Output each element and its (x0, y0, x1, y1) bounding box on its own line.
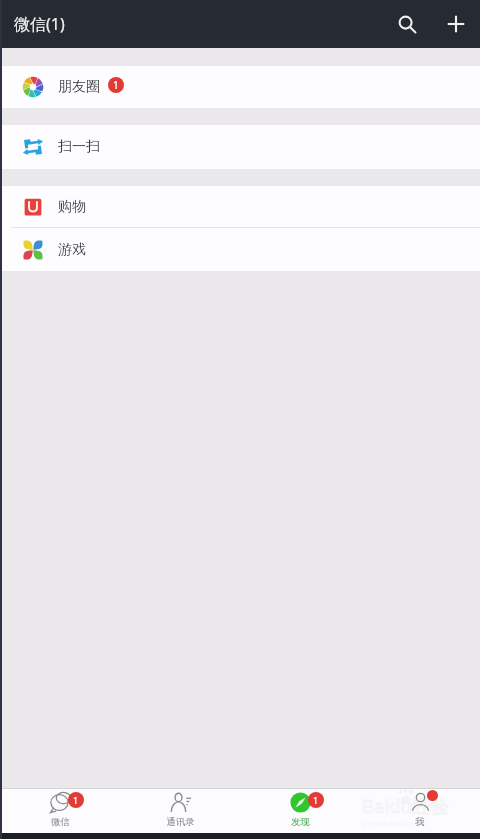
button[interactable]: 朋友圈 (0, 66, 480, 108)
staticText: 游戏 (58, 241, 86, 259)
staticText: 通讯录 (166, 816, 195, 828)
staticText: jingyan.baidu.com (362, 818, 427, 828)
staticText: 1 (313, 794, 319, 806)
button[interactable]: Search (386, 3, 428, 45)
button[interactable]: 我 (360, 789, 480, 833)
staticText: 发现 (291, 816, 310, 828)
staticText: 微信(1) (14, 13, 65, 35)
button[interactable]: 1 (240, 789, 360, 833)
staticText: 我 (415, 816, 425, 828)
staticText: 购物 (58, 198, 86, 216)
button[interactable]: 购物 (0, 186, 480, 228)
staticText: 微信 (51, 816, 70, 828)
staticText: 朋友圈 (58, 78, 100, 96)
button[interactable]: 扫一扫 (0, 125, 480, 169)
button[interactable]: 通讯录 (120, 789, 240, 833)
button[interactable]: 游戏 (0, 228, 480, 271)
staticText: 1 (113, 78, 119, 92)
staticText: Baidu经验 (362, 793, 449, 818)
staticText: 1 (73, 794, 79, 806)
button[interactable]: 1 (0, 789, 120, 833)
staticText: 扫一扫 (58, 138, 100, 156)
button[interactable]: Add (435, 3, 477, 45)
